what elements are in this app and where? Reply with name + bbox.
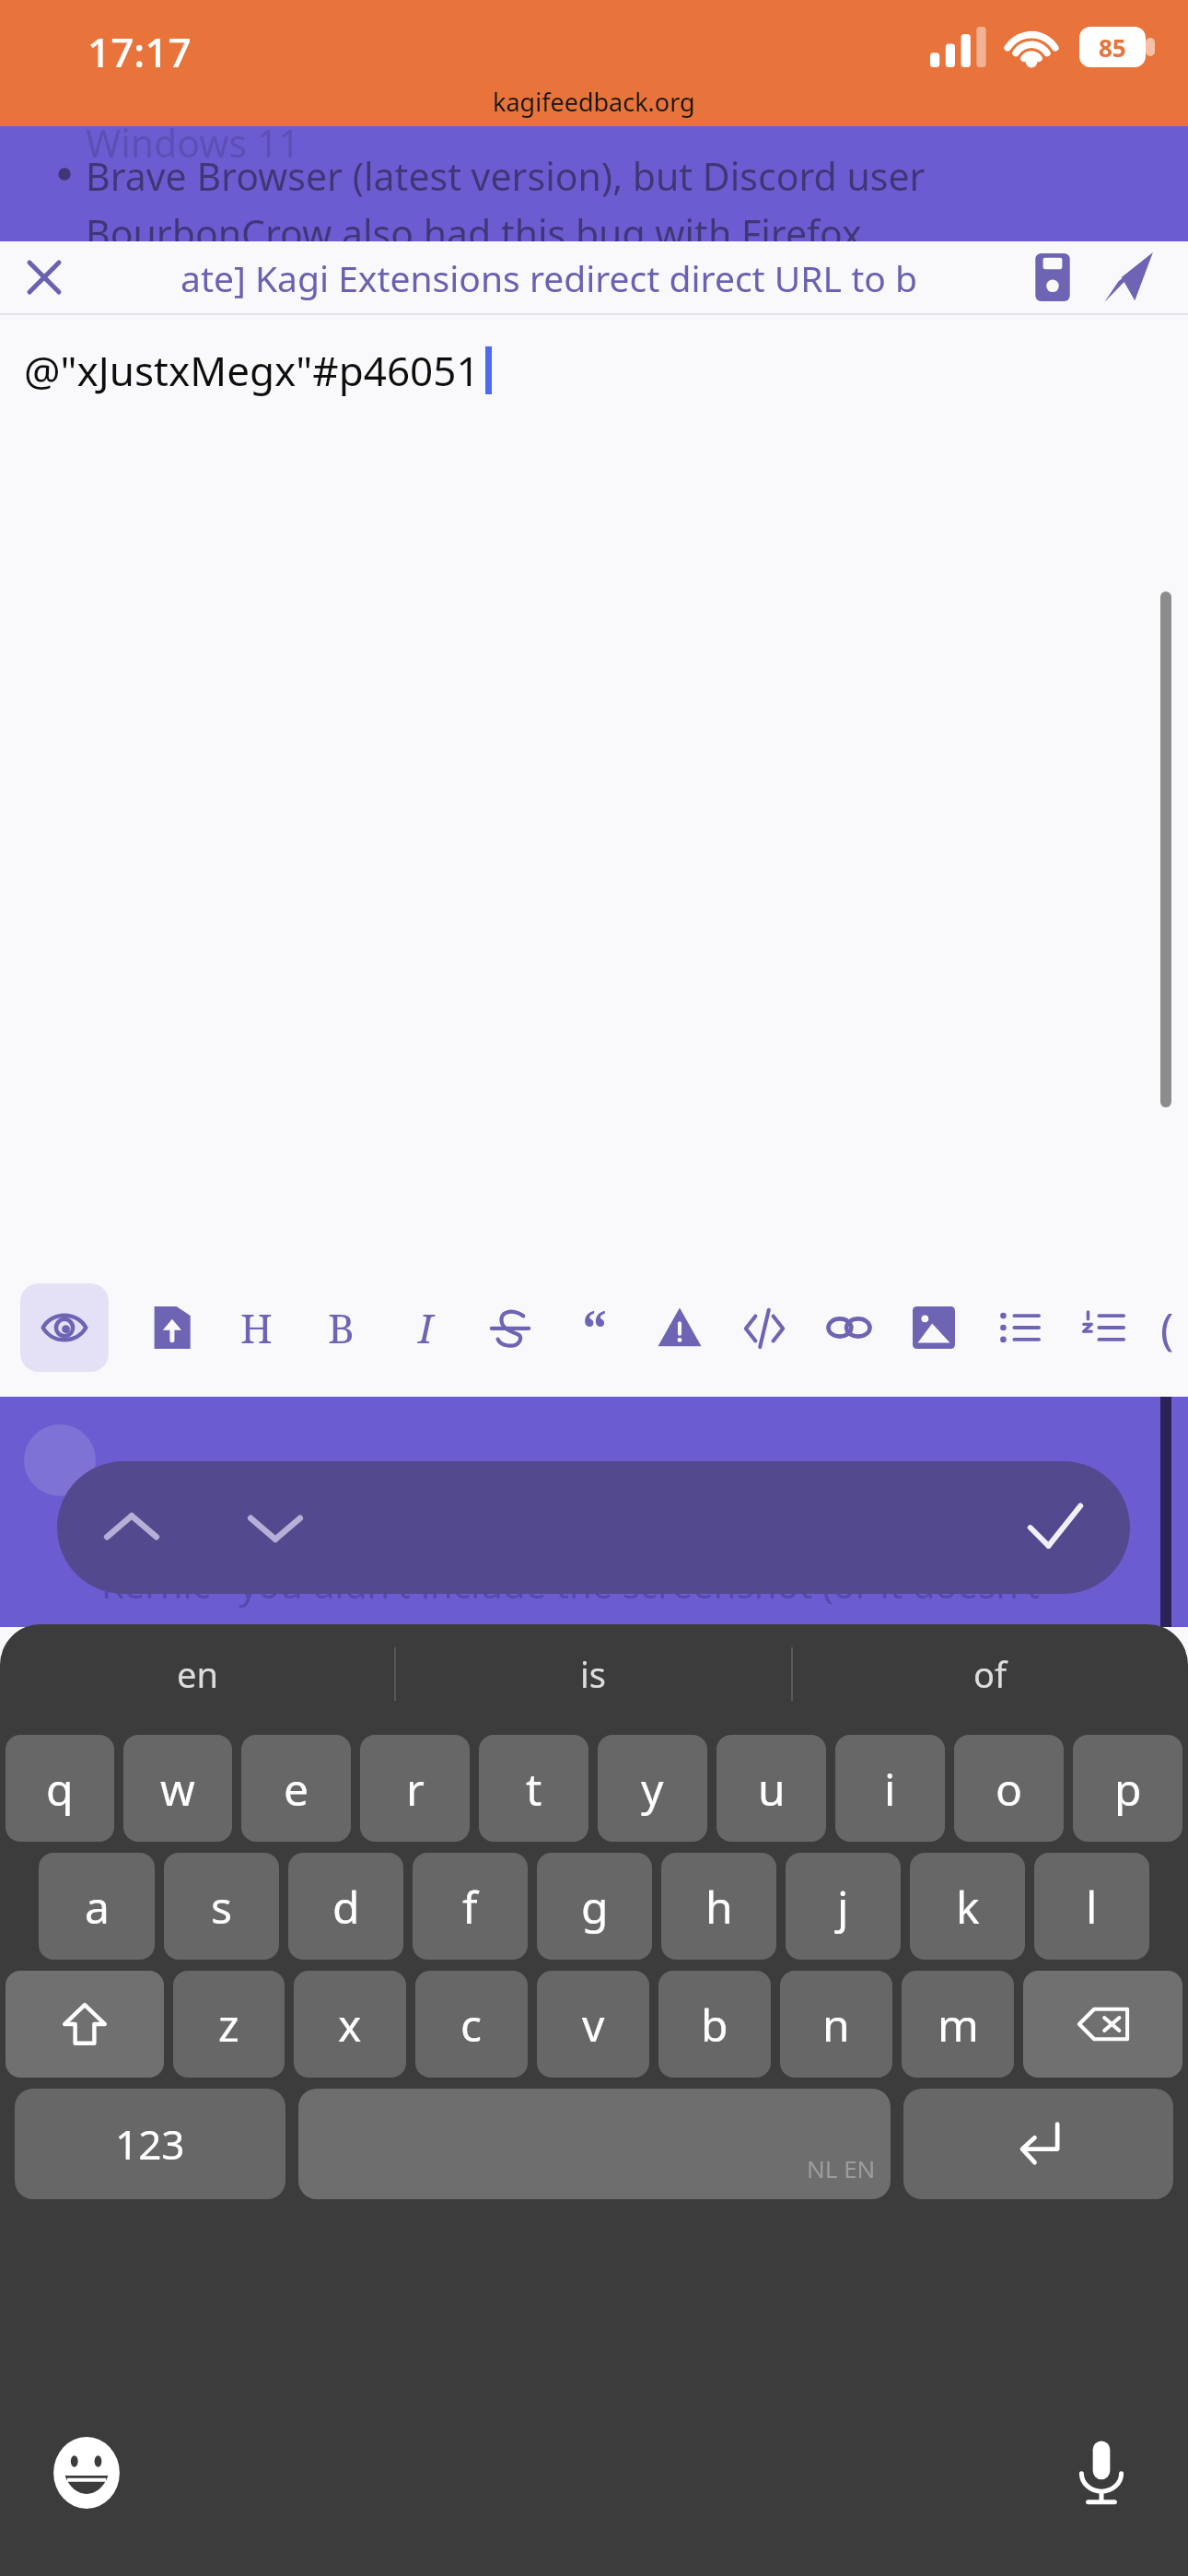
button[interactable]: n	[780, 1971, 892, 2078]
button[interactable]: Link	[807, 1285, 891, 1370]
button[interactable]: i	[835, 1735, 945, 1842]
button[interactable]: en	[0, 1624, 394, 1724]
staticText: BourbonCrow also had this bug with Firef…	[86, 207, 872, 241]
button[interactable]: u	[716, 1735, 826, 1842]
button[interactable]: Voice input	[1057, 2429, 1146, 2517]
button[interactable]: x	[294, 1971, 406, 2078]
button[interactable]: h	[661, 1853, 776, 1960]
button[interactable]: Quote	[553, 1285, 637, 1370]
button[interactable]: Emoji	[42, 2429, 131, 2517]
staticText: w	[160, 1759, 195, 1819]
staticText: h	[705, 1877, 733, 1937]
staticText: n	[822, 1995, 850, 2055]
button[interactable]: j	[786, 1853, 901, 1960]
staticText: I	[418, 1300, 434, 1355]
button[interactable]: k	[910, 1853, 1025, 1960]
staticText: q	[46, 1759, 74, 1819]
button[interactable]: r	[360, 1735, 470, 1842]
button[interactable]: Close	[7, 241, 81, 313]
button[interactable]: Previous field	[81, 1477, 182, 1578]
staticText: i	[884, 1759, 896, 1819]
staticText: g	[581, 1877, 609, 1937]
staticText: @"xJustxMegx"#p46051	[24, 343, 480, 398]
button[interactable]: Code	[722, 1285, 807, 1370]
button[interactable]: s	[164, 1853, 279, 1960]
staticText: H	[240, 1300, 273, 1355]
button[interactable]: Enter	[903, 2089, 1173, 2199]
button[interactable]: y	[598, 1735, 707, 1842]
staticText: s	[211, 1877, 232, 1937]
staticText: is	[580, 1650, 607, 1698]
staticText: r	[406, 1759, 425, 1819]
staticText: Windows 11	[86, 117, 300, 169]
button[interactable]: Image	[891, 1285, 976, 1370]
staticText: ate] Kagi Extensions redirect direct URL…	[181, 253, 917, 302]
staticText: z	[218, 1995, 239, 2055]
staticText: of	[973, 1650, 1007, 1698]
button[interactable]: Save draft	[1017, 241, 1089, 313]
button[interactable]: Bullet list	[976, 1285, 1061, 1370]
staticText: l	[1086, 1877, 1098, 1937]
button[interactable]: p	[1073, 1735, 1182, 1842]
staticText: 17:17	[87, 24, 192, 79]
staticText: p	[1114, 1759, 1142, 1819]
button[interactable]: Send	[1089, 241, 1168, 313]
button[interactable]: z	[173, 1971, 285, 2078]
button[interactable]: f	[413, 1853, 528, 1960]
button[interactable]: a	[39, 1853, 155, 1960]
staticText: 85	[1099, 31, 1126, 64]
button[interactable]: e	[241, 1735, 351, 1842]
button[interactable]: Heading	[214, 1285, 298, 1370]
staticText: (	[1160, 1298, 1174, 1358]
staticText: o	[996, 1759, 1023, 1819]
button[interactable]: Italic	[383, 1285, 468, 1370]
staticText: kagifeedback.org	[493, 85, 695, 119]
staticText: c	[460, 1995, 483, 2055]
button[interactable]: Upload	[129, 1285, 214, 1370]
staticText: k	[956, 1877, 980, 1937]
button[interactable]: is	[396, 1624, 791, 1724]
staticText: t	[526, 1759, 542, 1819]
staticText: B	[328, 1300, 355, 1355]
staticText: m	[938, 1995, 979, 2055]
button[interactable]: b	[658, 1971, 771, 2078]
button[interactable]: w	[123, 1735, 232, 1842]
button[interactable]: Warning	[637, 1285, 722, 1370]
button[interactable]: Backspace	[1023, 1971, 1182, 2078]
button[interactable]: g	[537, 1853, 652, 1960]
button[interactable]: Space	[298, 2089, 891, 2199]
button[interactable]: Bold	[298, 1285, 383, 1370]
button[interactable]: q	[6, 1735, 114, 1842]
staticText: f	[462, 1877, 478, 1937]
button[interactable]: Shift	[6, 1971, 164, 2078]
button[interactable]: v	[537, 1971, 649, 2078]
button[interactable]: o	[954, 1735, 1064, 1842]
staticText: Brave Browser (latest version), but Disc…	[86, 150, 926, 202]
staticText: y	[641, 1759, 664, 1819]
button[interactable]: of	[793, 1624, 1188, 1724]
staticText: u	[758, 1759, 786, 1819]
staticText: a	[85, 1877, 110, 1937]
button[interactable]: 123	[15, 2089, 285, 2199]
button[interactable]: l	[1034, 1853, 1149, 1960]
staticText: d	[332, 1877, 360, 1937]
button[interactable]: c	[415, 1971, 528, 2078]
staticText: x	[338, 1995, 362, 2055]
staticText: b	[701, 1995, 728, 2055]
staticText: en	[177, 1650, 218, 1698]
staticText: j	[837, 1877, 849, 1937]
staticText: NL EN	[807, 2152, 876, 2184]
button[interactable]: Strikethrough	[468, 1285, 553, 1370]
staticText: v	[582, 1995, 605, 2055]
staticText: Kernic you didn't include the screenshot…	[101, 1559, 1041, 1609]
button[interactable]: Preview	[20, 1283, 109, 1372]
button[interactable]: t	[479, 1735, 588, 1842]
staticText: e	[284, 1759, 309, 1819]
button[interactable]: Numbered list	[1061, 1285, 1146, 1370]
staticText: 123	[115, 2116, 185, 2172]
staticText: “	[582, 1293, 608, 1363]
button[interactable]: d	[288, 1853, 403, 1960]
button[interactable]: Next field	[225, 1477, 326, 1578]
button[interactable]: m	[902, 1971, 1014, 2078]
button[interactable]: Done	[1005, 1477, 1106, 1578]
